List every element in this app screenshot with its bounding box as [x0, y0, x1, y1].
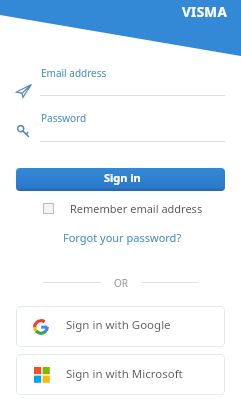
button[interactable]: Remember email address	[43, 201, 203, 215]
staticText: Sign in with Google	[66, 317, 171, 333]
button[interactable]: Forgot your password?	[63, 230, 182, 245]
button[interactable]: Password	[40, 109, 225, 142]
staticText: Remember email address	[70, 201, 203, 215]
button[interactable]: Sign in	[16, 168, 225, 191]
staticText: Password	[41, 111, 87, 125]
staticText: Email address	[41, 66, 107, 80]
staticText: Sign in with Microsoft	[66, 366, 183, 382]
staticText: VISMA	[182, 3, 228, 21]
button[interactable]: Sign in with Microsoft	[16, 354, 225, 395]
button[interactable]: Email address	[40, 64, 225, 96]
staticText: Sign in	[104, 170, 141, 185]
staticText: OR	[114, 276, 129, 289]
button[interactable]: Sign in with Google	[16, 306, 225, 347]
